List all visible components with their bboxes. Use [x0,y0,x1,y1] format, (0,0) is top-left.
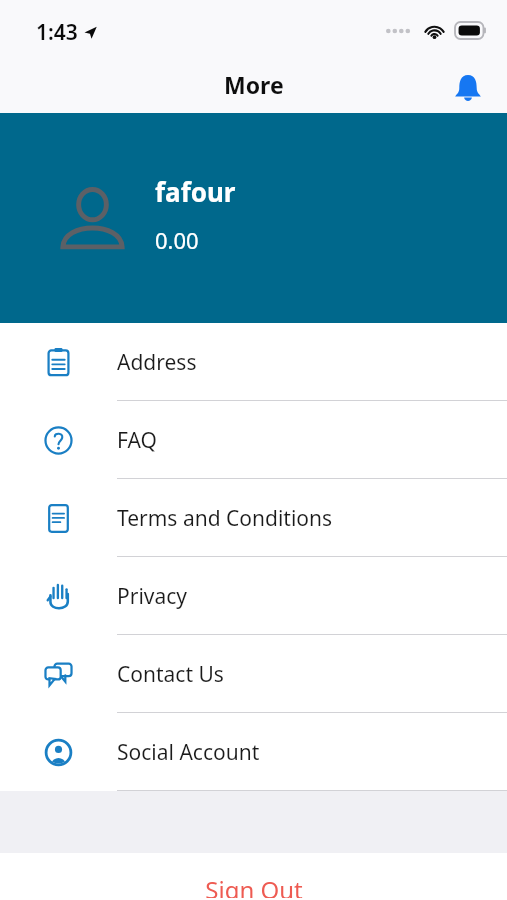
button[interactable]: Social Account [0,713,507,791]
button[interactable]: Sign Out [0,853,507,898]
button[interactable]: Address [0,323,507,401]
staticText: More [224,69,284,100]
staticText: Social Account [117,738,260,767]
button[interactable]: Notifications [445,65,491,111]
staticText: FAQ [117,426,157,455]
staticText: fafour [155,174,236,209]
staticText: Sign Out [205,873,303,898]
button[interactable]: FAQ [0,401,507,479]
staticText: Address [117,348,197,377]
button[interactable]: Privacy [0,557,507,635]
button[interactable]: Terms and Conditions [0,479,507,557]
staticText: 1:43 [36,18,78,47]
staticText: Privacy [117,582,188,611]
staticText: 0.00 [155,225,199,255]
staticText: Terms and Conditions [117,504,333,533]
button[interactable]: Contact Us [0,635,507,713]
staticText: Contact Us [117,660,224,689]
